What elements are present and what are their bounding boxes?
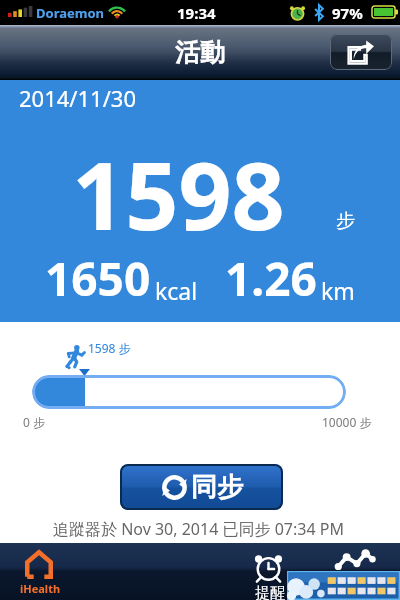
staticText: 1598 步 bbox=[88, 340, 131, 356]
staticText: kcal bbox=[155, 275, 198, 306]
staticText: km bbox=[321, 275, 355, 306]
staticText: 1650 bbox=[45, 247, 151, 310]
button[interactable]: 提醒 bbox=[243, 543, 295, 600]
button[interactable]: 同步 bbox=[120, 464, 283, 510]
staticText: iHealth bbox=[20, 581, 61, 596]
staticText: 0 步 bbox=[23, 414, 45, 430]
button[interactable]: Share bbox=[330, 34, 392, 70]
staticText: 2014/11/30 bbox=[19, 83, 137, 113]
staticText: 19:34 bbox=[177, 3, 216, 23]
staticText: 10000 步 bbox=[322, 414, 372, 430]
staticText: 1.26 bbox=[225, 247, 317, 310]
staticText: Doraemon bbox=[36, 4, 104, 22]
button[interactable]: iHealth bbox=[4, 543, 76, 600]
staticText: 活動 bbox=[175, 37, 225, 68]
staticText: 1598 bbox=[72, 131, 285, 258]
staticText: 追蹤器於 Nov 30, 2014 已同步 07:34 PM bbox=[53, 518, 344, 540]
staticText: 提醒 bbox=[255, 584, 285, 600]
staticText: 步 bbox=[336, 209, 355, 233]
staticText: 同步 bbox=[191, 471, 243, 504]
staticText: 97% bbox=[332, 3, 363, 23]
button[interactable]: Trends bbox=[323, 543, 387, 600]
